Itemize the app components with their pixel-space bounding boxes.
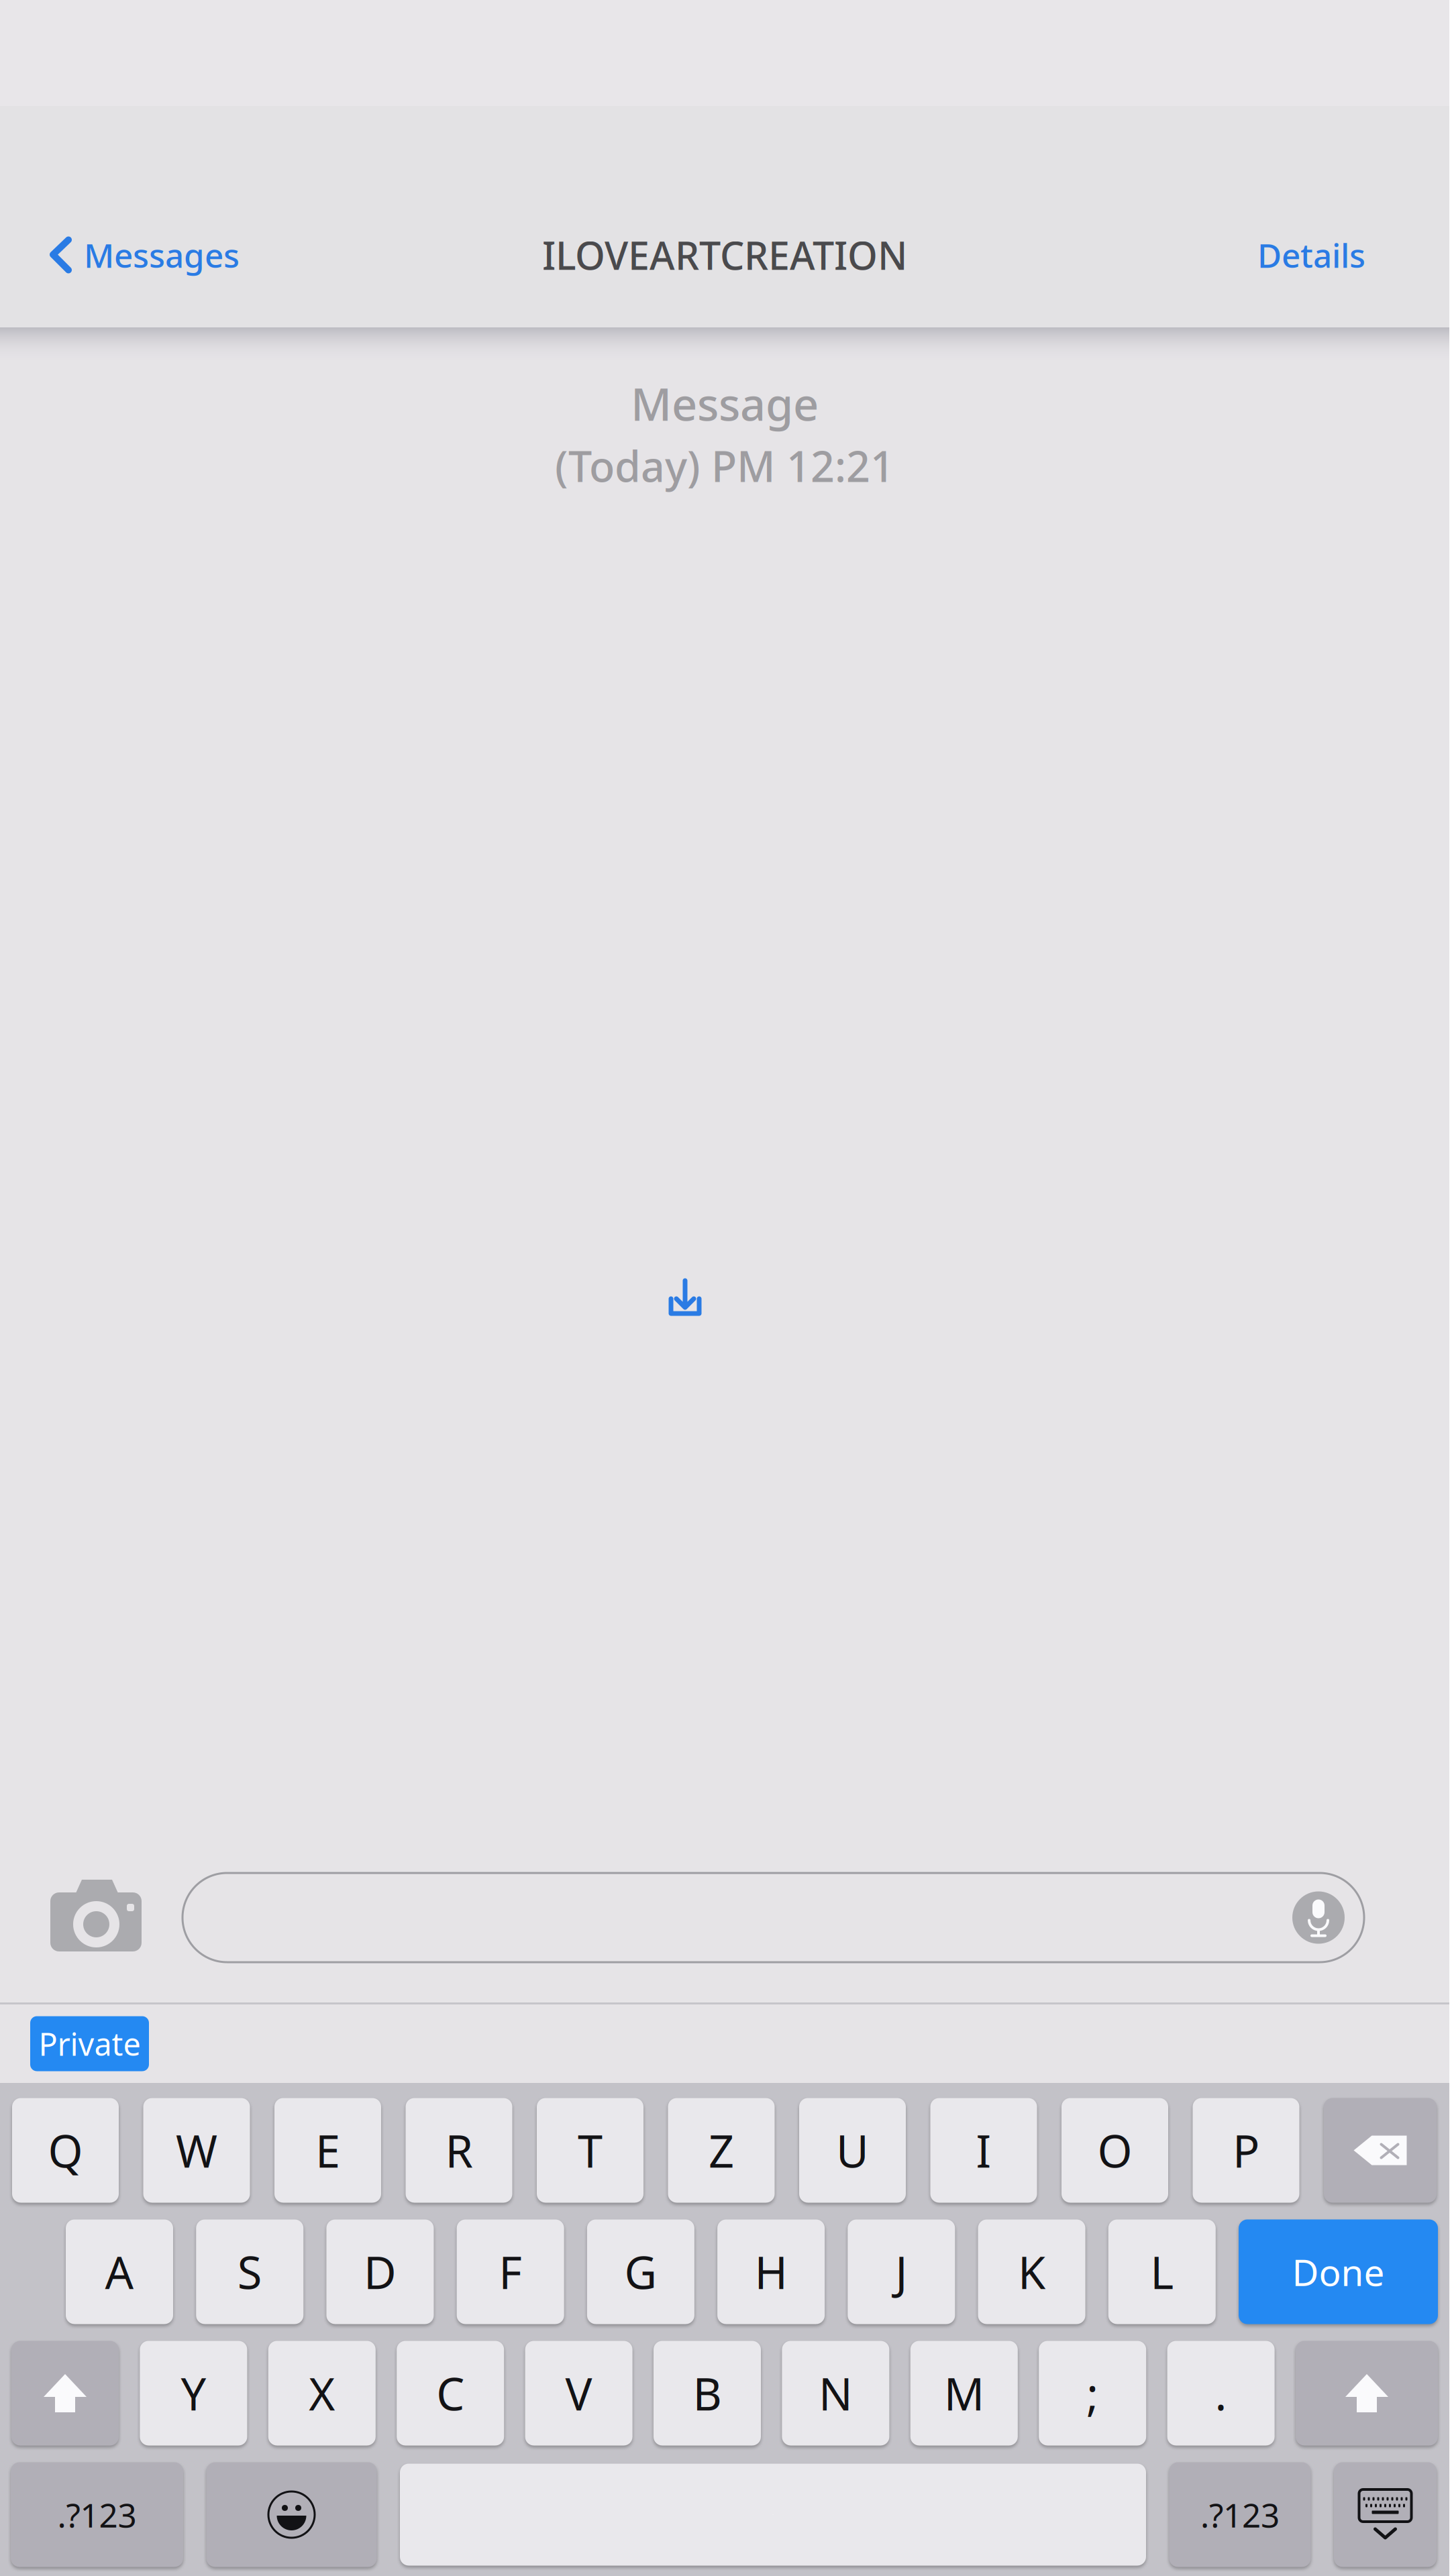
button[interactable]: ; — [1039, 2341, 1146, 2446]
button[interactable]: H — [717, 2219, 825, 2324]
button[interactable]: G — [587, 2219, 694, 2324]
button[interactable]: Z — [668, 2098, 775, 2203]
staticText: O — [1097, 2121, 1132, 2180]
staticText: X — [309, 2363, 335, 2423]
button[interactable]: S — [196, 2219, 303, 2324]
button[interactable]: Details — [1237, 182, 1449, 327]
button[interactable]: Delete — [1324, 2098, 1437, 2203]
button[interactable]: T — [537, 2098, 643, 2203]
staticText: T — [578, 2121, 603, 2180]
button[interactable]: Camera — [50, 1880, 142, 1951]
button[interactable]: N — [782, 2341, 889, 2446]
button[interactable]: Private — [30, 2016, 149, 2071]
staticText: S — [237, 2242, 262, 2301]
button[interactable]: U — [799, 2098, 906, 2203]
staticText: V — [565, 2363, 592, 2423]
staticText: Done — [1292, 2247, 1385, 2296]
button[interactable]: Shift — [1296, 2341, 1438, 2446]
button[interactable]: Q — [12, 2098, 119, 2203]
staticText: B — [693, 2363, 722, 2423]
button[interactable]: Done — [1239, 2219, 1438, 2324]
staticText: F — [499, 2242, 522, 2301]
staticText: Message — [631, 374, 819, 433]
staticText: .?123 — [1200, 2493, 1280, 2537]
staticText: Z — [709, 2121, 734, 2180]
button[interactable]: P — [1193, 2098, 1299, 2203]
staticText: ILOVEARTCREATION — [542, 229, 907, 280]
staticText: ; — [1086, 2363, 1099, 2423]
staticText: P — [1233, 2121, 1259, 2180]
staticText: J — [895, 2242, 907, 2301]
staticText: Details — [1257, 233, 1365, 277]
button[interactable]: K — [978, 2219, 1085, 2324]
button[interactable]: W — [143, 2098, 250, 2203]
button[interactable]: .?123 — [11, 2462, 183, 2567]
button[interactable]: O — [1061, 2098, 1168, 2203]
staticText: U — [836, 2121, 869, 2180]
staticText: Y — [181, 2363, 206, 2423]
button[interactable]: Hide keyboard — [1334, 2462, 1437, 2567]
button[interactable]: F — [457, 2219, 564, 2324]
staticText: Messages — [84, 233, 240, 277]
button[interactable]: I — [930, 2098, 1037, 2203]
staticText: R — [445, 2121, 473, 2180]
staticText: . — [1215, 2363, 1227, 2423]
button[interactable]: V — [525, 2341, 632, 2446]
staticText: W — [176, 2121, 217, 2180]
button[interactable]: C — [397, 2341, 504, 2446]
button[interactable]: .?123 — [1169, 2462, 1311, 2567]
staticText: Private — [39, 2023, 141, 2064]
button[interactable]: Y — [140, 2341, 247, 2446]
button[interactable]: X — [268, 2341, 376, 2446]
button[interactable]: J — [848, 2219, 955, 2324]
button[interactable]: Download attachment — [668, 1279, 702, 1316]
button[interactable]: Dictate — [1292, 1891, 1345, 1944]
staticText: I — [976, 2121, 991, 2180]
staticText: K — [1018, 2242, 1045, 2301]
staticText: (Today) PM 12:21 — [555, 438, 894, 494]
staticText: N — [819, 2363, 853, 2423]
staticText: C — [436, 2363, 464, 2423]
staticText: H — [755, 2242, 787, 2301]
button[interactable]: Messages — [0, 182, 260, 327]
button[interactable]: A — [66, 2219, 173, 2324]
staticText: Q — [48, 2121, 83, 2180]
button[interactable]: E — [274, 2098, 381, 2203]
button[interactable]: B — [654, 2341, 761, 2446]
button[interactable]: R — [406, 2098, 512, 2203]
staticText: D — [364, 2242, 396, 2301]
staticText: .?123 — [57, 2493, 137, 2537]
staticText: L — [1150, 2242, 1174, 2301]
button[interactable]: M — [910, 2341, 1018, 2446]
button[interactable]: Space — [400, 2464, 1146, 2566]
button[interactable]: Shift — [11, 2341, 119, 2446]
button[interactable]: Emoji keyboard — [206, 2462, 377, 2567]
staticText: E — [315, 2121, 340, 2180]
staticText: A — [105, 2242, 134, 2301]
staticText: G — [624, 2242, 657, 2301]
staticText: M — [944, 2363, 984, 2423]
button[interactable]: D — [326, 2219, 434, 2324]
button[interactable]: . — [1167, 2341, 1275, 2446]
button[interactable]: L — [1108, 2219, 1216, 2324]
